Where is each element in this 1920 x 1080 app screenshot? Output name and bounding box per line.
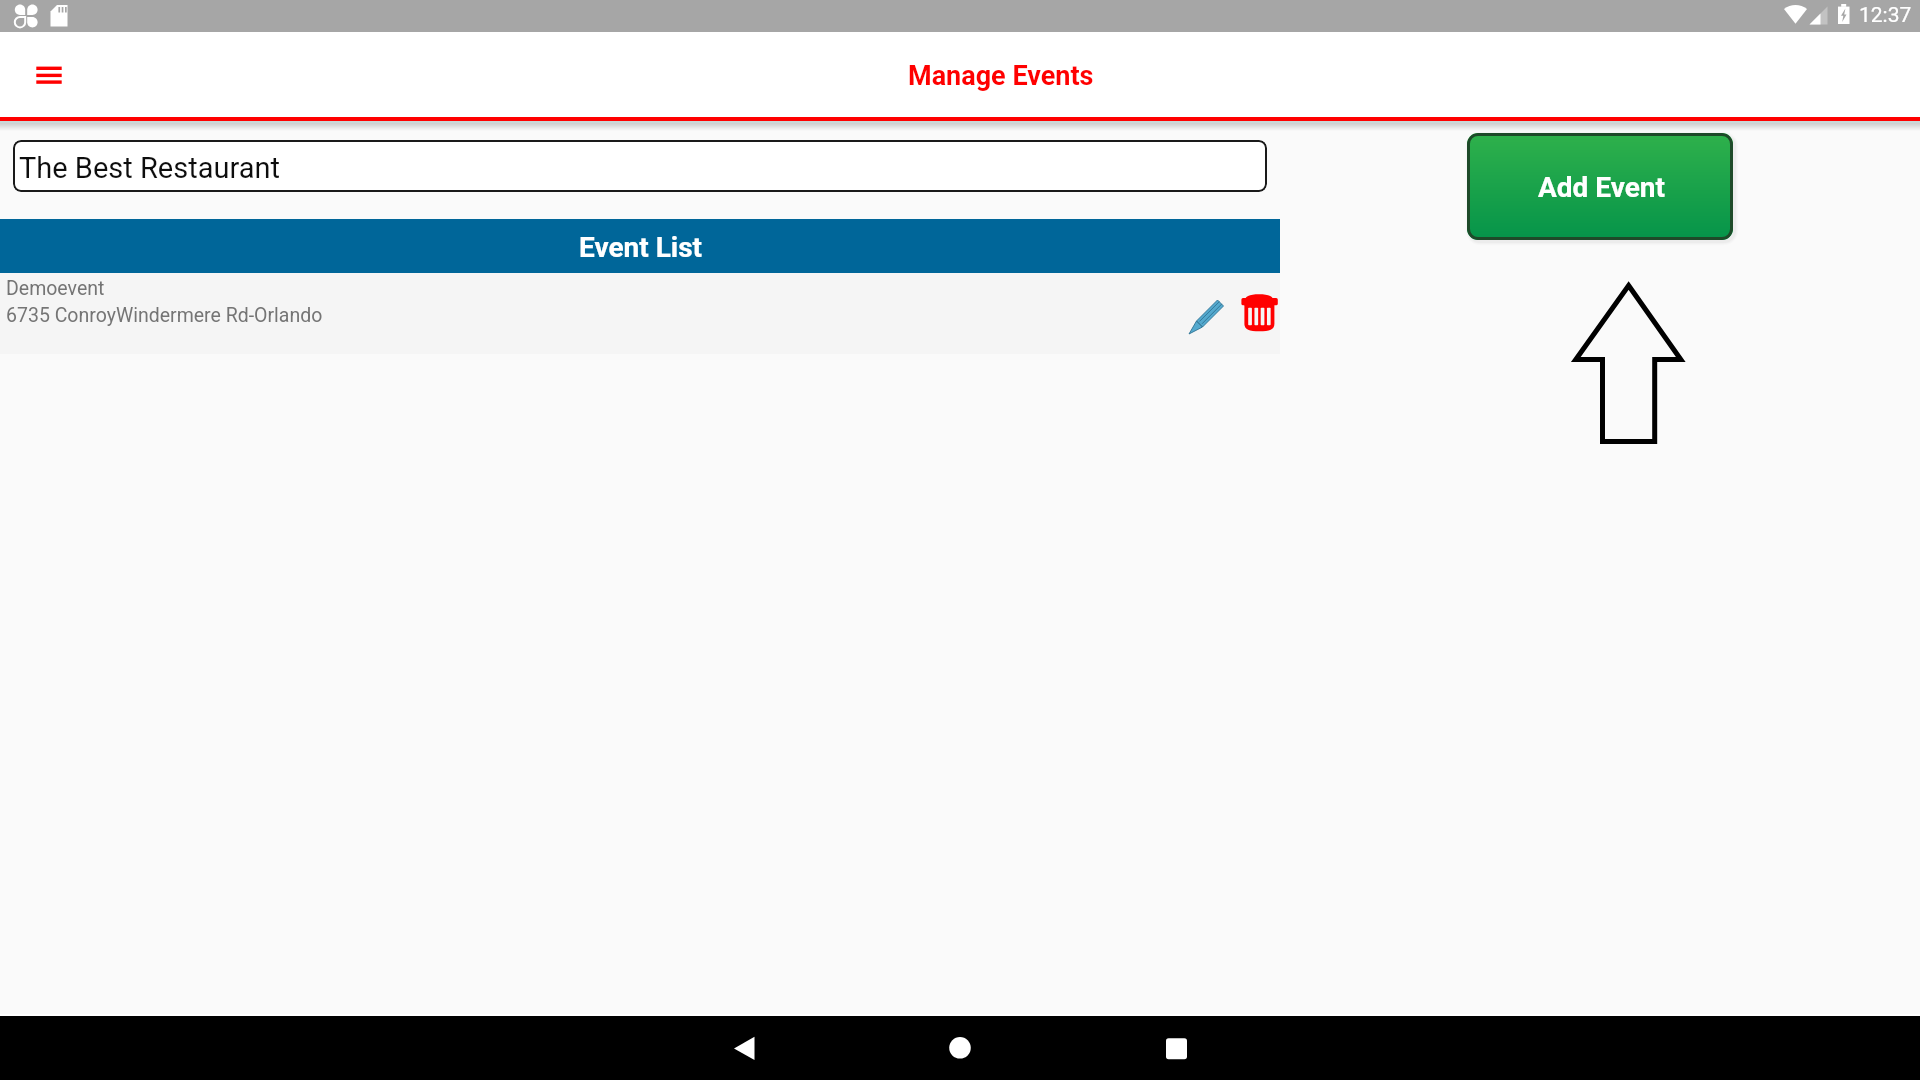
button[interactable]: Recents — [1136, 1016, 1216, 1080]
staticText: 6735 ConroyWindermere Rd-Orlando — [6, 304, 323, 327]
staticText: Manage Events — [908, 60, 1094, 92]
button[interactable]: Home — [920, 1016, 1000, 1080]
button[interactable]: Back — [704, 1016, 784, 1080]
button[interactable]: Delete — [1240, 294, 1280, 334]
staticText: Demoevent — [6, 277, 105, 300]
button[interactable]: Edit — [1186, 293, 1226, 333]
staticText: 12:37 — [1859, 3, 1912, 28]
button[interactable]: Add Event — [1467, 133, 1733, 240]
staticText: The Best Restaurant — [19, 151, 280, 185]
staticText: Event List — [579, 231, 703, 264]
button[interactable]: The Best Restaurant — [13, 140, 1267, 192]
staticText: Add Event — [1538, 171, 1665, 204]
button[interactable]: Demoevent — [0, 273, 1280, 354]
button[interactable]: Menu — [20, 46, 78, 104]
